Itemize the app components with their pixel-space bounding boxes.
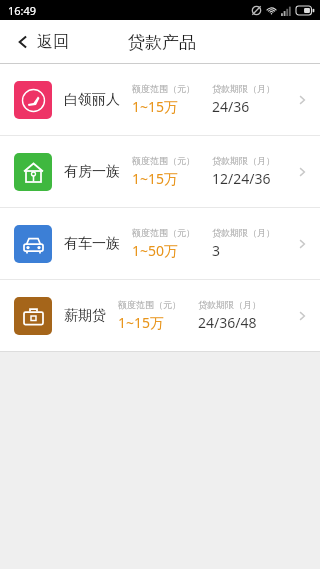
staticText: 贷款期限（月） bbox=[212, 227, 275, 238]
staticText: 3 bbox=[212, 241, 221, 260]
button[interactable]: 薪期贷 bbox=[0, 280, 320, 351]
staticText: 1~15万 bbox=[118, 313, 165, 332]
staticText: 贷款期限（月） bbox=[212, 155, 275, 166]
staticText: 返回 bbox=[37, 32, 69, 52]
staticText: 薪期贷 bbox=[64, 307, 106, 325]
button[interactable]: 有房一族 bbox=[0, 136, 320, 207]
staticText: 额度范围（元） bbox=[132, 155, 195, 166]
staticText: 12/24/36 bbox=[212, 169, 271, 188]
staticText: 24/36/48 bbox=[198, 313, 257, 332]
staticText: 1~15万 bbox=[132, 97, 179, 116]
staticText: 额度范围（元） bbox=[132, 227, 195, 238]
staticText: 1~15万 bbox=[132, 169, 179, 188]
staticText: 24/36 bbox=[212, 97, 250, 116]
staticText: 有车一族 bbox=[64, 235, 120, 253]
staticText: 贷款期限（月） bbox=[198, 299, 261, 310]
staticText: 额度范围（元） bbox=[118, 299, 181, 310]
staticText: 1~50万 bbox=[132, 241, 179, 260]
staticText: 额度范围（元） bbox=[132, 83, 195, 94]
staticText: 贷款产品 bbox=[128, 32, 196, 53]
other: Back bbox=[16, 35, 30, 49]
button[interactable]: 有车一族 bbox=[0, 208, 320, 279]
button[interactable]: 白领丽人 bbox=[0, 64, 320, 135]
staticText: 有房一族 bbox=[64, 163, 120, 181]
staticText: 16:49 bbox=[8, 3, 37, 18]
staticText: 白领丽人 bbox=[64, 91, 120, 109]
staticText: 贷款期限（月） bbox=[212, 83, 275, 94]
button[interactable]: Back bbox=[0, 24, 81, 60]
